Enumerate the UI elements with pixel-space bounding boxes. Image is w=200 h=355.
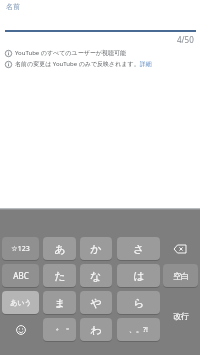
button[interactable]: ☆123 <box>2 237 39 260</box>
button[interactable]: か <box>80 237 112 260</box>
staticText: な <box>90 269 102 283</box>
button[interactable]: ゛゜ <box>43 318 76 341</box>
staticText: 空白 <box>173 271 189 281</box>
staticText: YouTube のすべてのユーザーが視聴可能 <box>15 49 126 57</box>
button[interactable]: 空白 <box>163 264 198 287</box>
button[interactable]: あいう <box>2 291 39 314</box>
button[interactable]: は <box>117 264 160 287</box>
staticText: や <box>90 296 102 310</box>
button[interactable]: や <box>80 291 112 314</box>
staticText: 4/50 <box>177 34 194 45</box>
staticText: さ <box>133 242 145 256</box>
button[interactable]: ま <box>43 291 76 314</box>
button[interactable]: ABC <box>2 264 39 287</box>
staticText: あ <box>54 242 66 256</box>
staticText: 名前 <box>6 2 20 11</box>
staticText: ら <box>133 296 145 310</box>
button[interactable]: 改行 <box>163 291 198 341</box>
staticText: か <box>90 242 102 256</box>
button[interactable]: ら <box>117 291 160 314</box>
button[interactable]: 名前の変更は YouTube のみで反映されます。詳細 <box>15 60 152 68</box>
staticText: ABC <box>13 270 29 281</box>
staticText: わ <box>90 323 102 337</box>
button[interactable] <box>2 318 39 341</box>
staticText: あいう <box>10 298 32 307</box>
staticText: ま <box>54 296 66 310</box>
button[interactable]: た <box>43 264 76 287</box>
button[interactable]: あ <box>43 237 76 260</box>
button[interactable] <box>163 237 198 260</box>
button[interactable]: 、。?! <box>117 318 160 341</box>
staticText: ゛゜ <box>49 326 70 339</box>
staticText: ☆123 <box>11 244 30 254</box>
staticText: た <box>54 269 66 283</box>
staticText: 、。?! <box>129 325 148 335</box>
staticText: は <box>133 269 145 283</box>
staticText: 改行 <box>173 311 189 321</box>
button[interactable]: な <box>80 264 112 287</box>
button[interactable]: わ <box>80 318 112 341</box>
button[interactable]: さ <box>117 237 160 260</box>
